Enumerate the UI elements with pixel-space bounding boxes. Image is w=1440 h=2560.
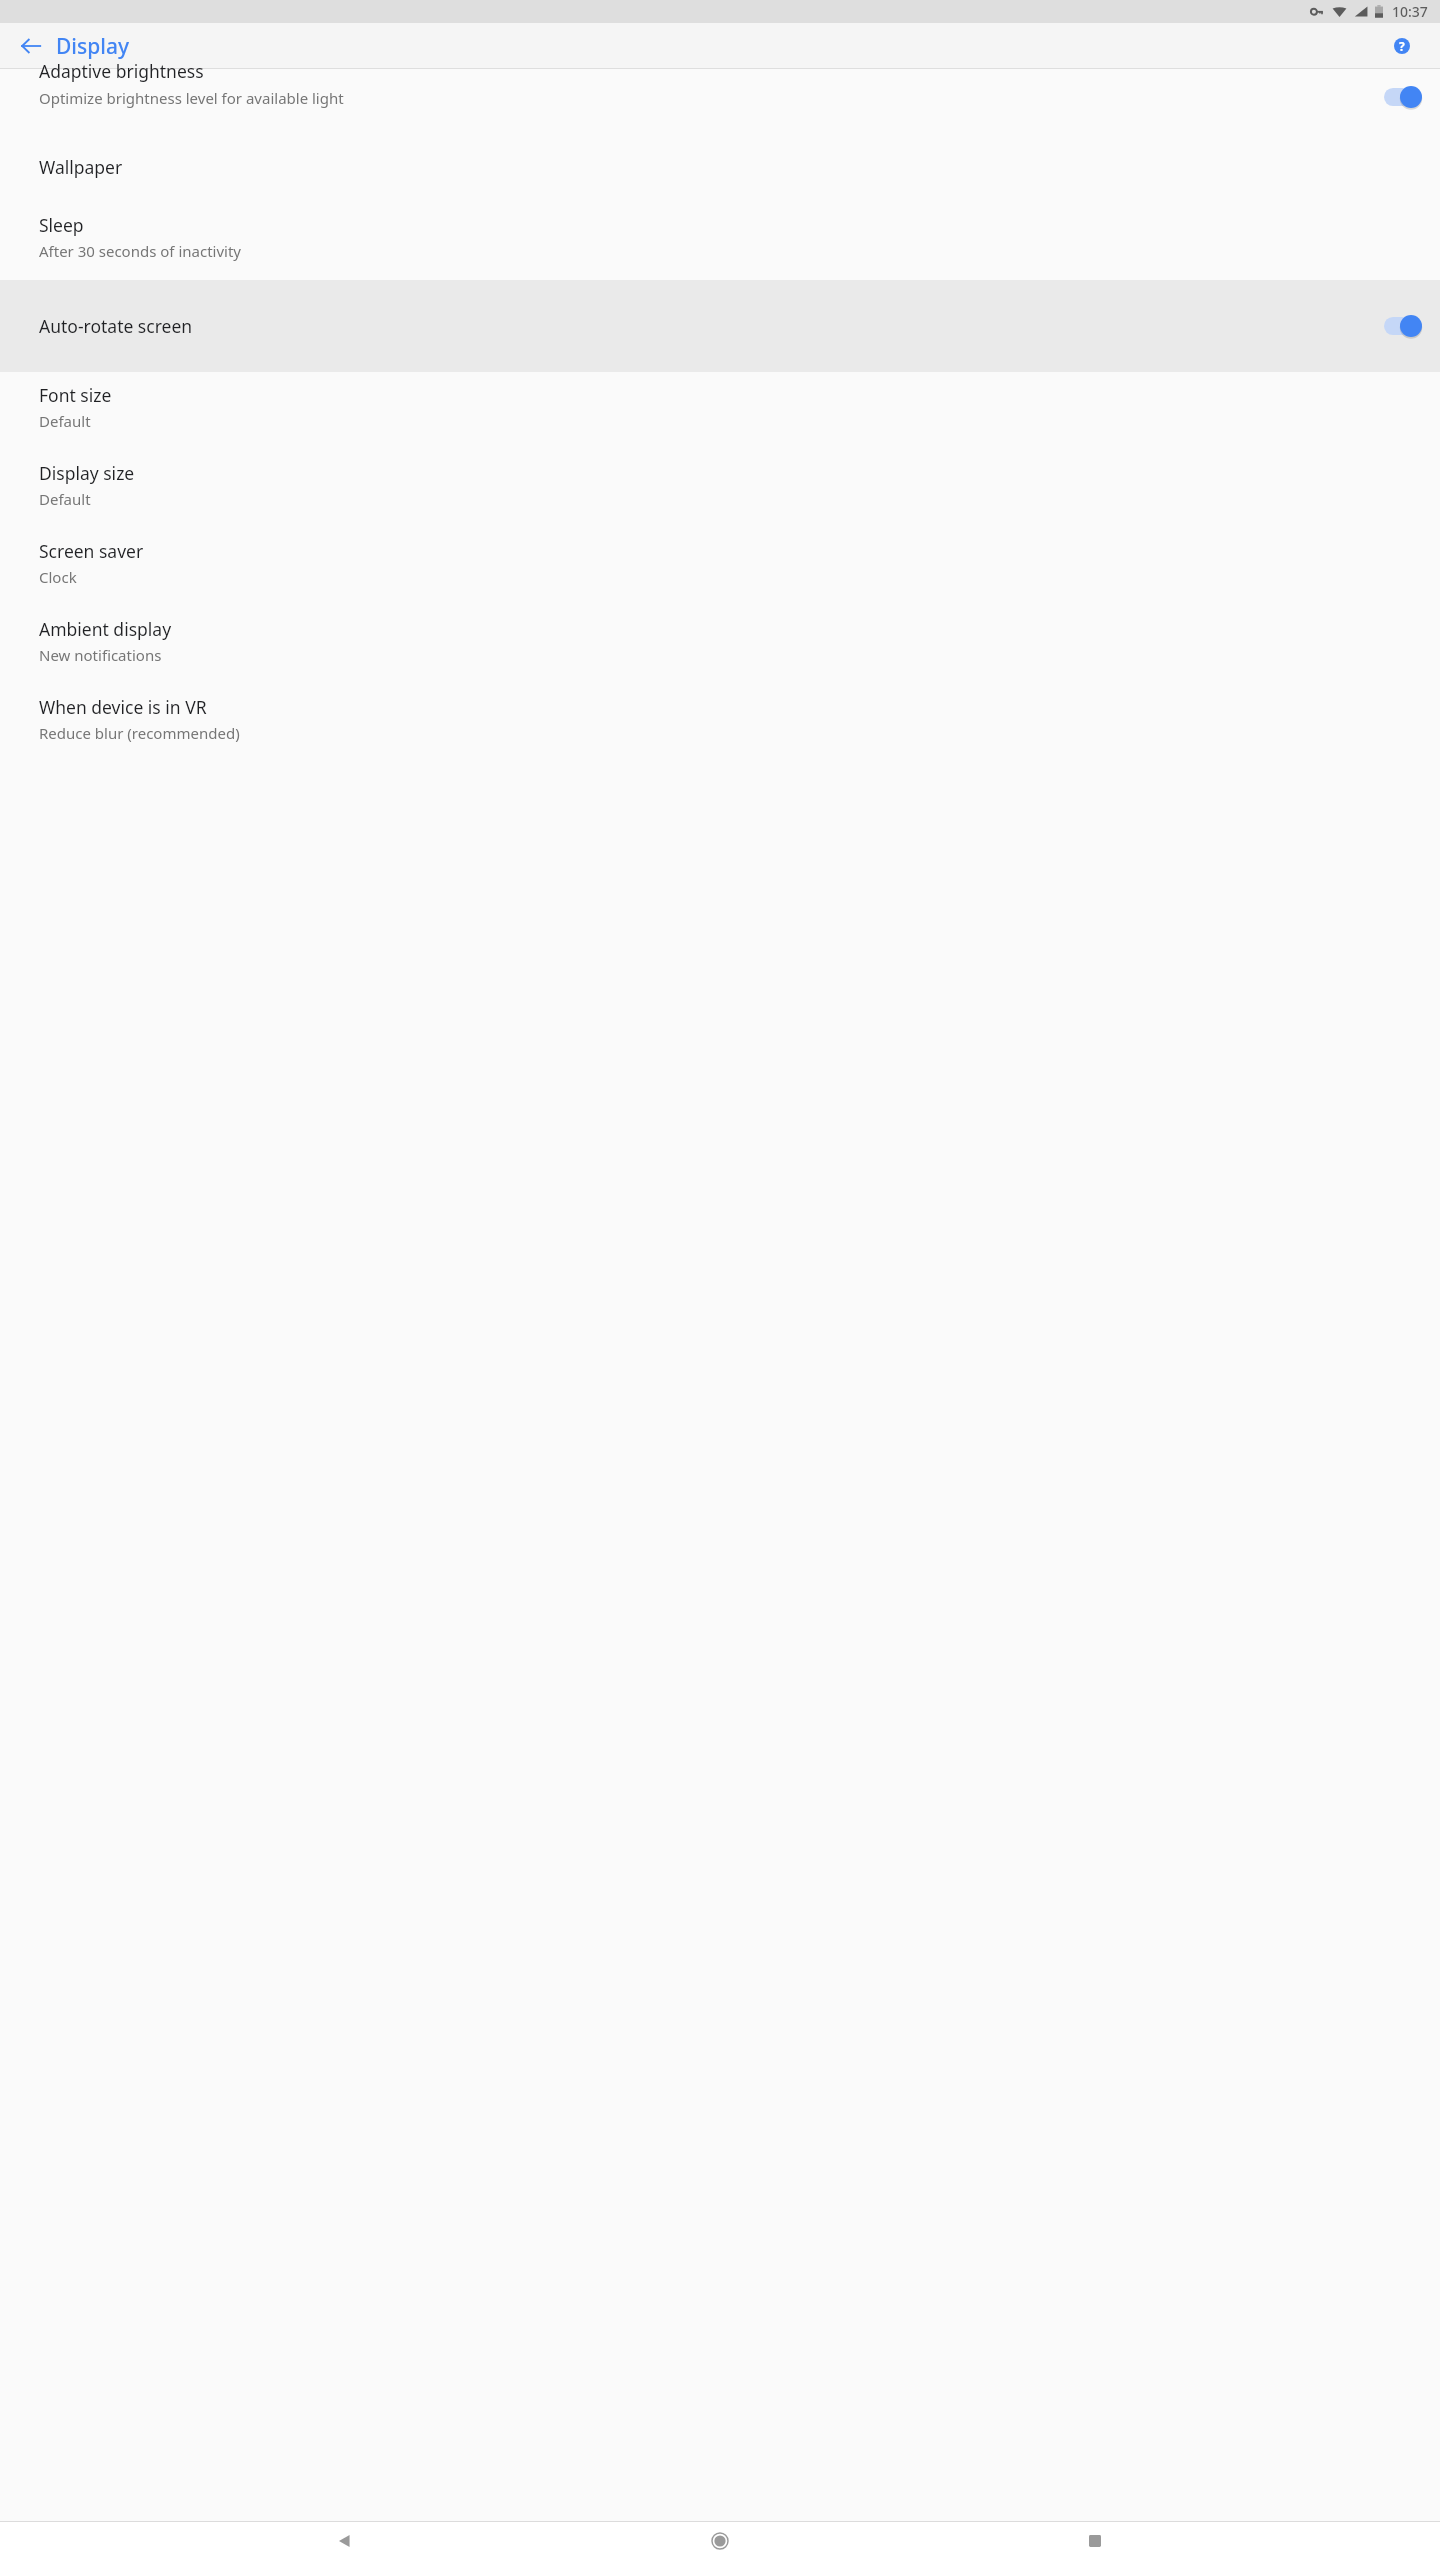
staticText: Default [39, 489, 91, 509]
button[interactable]: Sleep [0, 200, 1440, 280]
button[interactable]: Back [315, 2522, 375, 2560]
button[interactable]: Display size [0, 450, 1440, 528]
button[interactable]: Back [7, 23, 55, 69]
staticText: Display [56, 32, 130, 61]
staticText: Sleep [39, 213, 84, 237]
button[interactable]: Screen saver [0, 528, 1440, 606]
button[interactable]: Wallpaper [0, 142, 1440, 200]
staticText: New notifications [39, 645, 162, 665]
staticText: Ambient display [39, 617, 172, 641]
button[interactable]: Ambient display [0, 606, 1440, 684]
staticText: Screen saver [39, 539, 144, 563]
button[interactable]: When device is in VR [0, 684, 1440, 762]
staticText: Font size [39, 383, 112, 407]
staticText: ? [1399, 38, 1405, 54]
button[interactable]: Recent apps [1065, 2522, 1125, 2560]
staticText: Auto-rotate screen [39, 314, 1344, 338]
button[interactable]: Auto-rotate screen [0, 280, 1440, 372]
button[interactable]: Home [690, 2522, 750, 2560]
button[interactable]: Adaptive brightness [0, 69, 1440, 142]
staticText: Adaptive brightness [39, 59, 204, 83]
button[interactable]: Toggle [1384, 315, 1422, 337]
staticText: Wallpaper [39, 155, 123, 179]
button[interactable]: Toggle [1384, 86, 1422, 108]
staticText: Display size [39, 461, 135, 485]
staticText: Default [39, 411, 91, 431]
staticText: Reduce blur (recommended) [39, 723, 240, 743]
staticText: Optimize brightness level for available … [39, 88, 344, 108]
staticText: Clock [39, 567, 77, 587]
button[interactable]: Font size [0, 372, 1440, 450]
staticText: 10:37 [1392, 2, 1428, 21]
staticText: When device is in VR [39, 695, 207, 719]
staticText: After 30 seconds of inactivity [39, 241, 242, 261]
button[interactable]: Help [1378, 23, 1426, 69]
